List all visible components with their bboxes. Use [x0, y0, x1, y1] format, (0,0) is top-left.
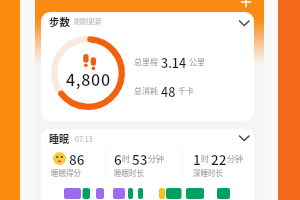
staticText: 时 [122, 153, 130, 165]
staticText: 分钟 [148, 153, 164, 165]
staticText: 时 [201, 153, 209, 165]
button[interactable] [238, 0, 254, 8]
staticText: 步数 [49, 14, 70, 29]
staticText: 深睡时长 [193, 167, 223, 178]
staticText: 48 [161, 82, 176, 100]
staticText: 总消耗 [134, 85, 158, 97]
staticText: 总里程 [134, 56, 158, 68]
staticText: 刚刚更新 [74, 16, 102, 26]
staticText: 1 [193, 149, 201, 169]
staticText: 公里 [189, 56, 205, 68]
staticText: 睡眠时长 [114, 167, 144, 178]
button[interactable] [239, 20, 250, 28]
staticText: 53 [132, 149, 148, 169]
staticText: 6 [114, 149, 122, 169]
button[interactable] [239, 135, 250, 143]
button[interactable]: 步数 [41, 12, 254, 121]
button[interactable]: 睡眠 [41, 129, 254, 200]
staticText: 22 [211, 149, 227, 169]
staticText: 86 [69, 149, 85, 169]
staticText: 睡眠 [49, 131, 69, 145]
staticText: 4,800 [66, 67, 111, 90]
staticText: 3.14 [161, 53, 187, 71]
staticText: 分钟 [227, 153, 243, 165]
staticText: 07:13 [75, 134, 93, 144]
staticText: 睡眠得分 [51, 167, 81, 178]
staticText: 千卡 [178, 85, 194, 97]
